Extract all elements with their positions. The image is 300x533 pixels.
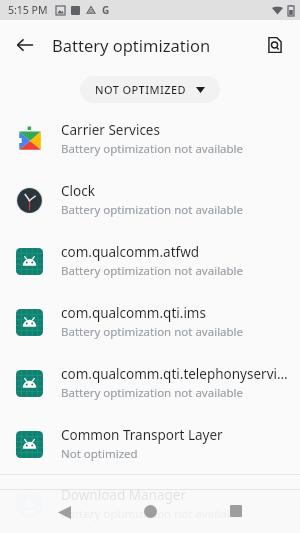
staticText: 5:15 PM — [8, 3, 48, 17]
button[interactable]: Back — [6, 26, 44, 64]
staticText: Common Transport Layer — [61, 426, 223, 444]
staticText: NOT OPTIMIZED — [95, 82, 186, 97]
staticText: com.qualcomm.atfwd — [61, 243, 200, 261]
staticText: Battery optimization not available — [61, 506, 244, 522]
staticText: com.qualcomm.qti.telephonyservice — [61, 365, 288, 383]
staticText: Battery optimization not available — [61, 263, 244, 279]
staticText: G — [102, 3, 110, 17]
staticText: Clock — [61, 182, 95, 200]
staticText: Battery optimization not available — [61, 202, 244, 218]
staticText: Battery optimization not available — [61, 385, 244, 401]
button[interactable]: com.qualcomm.atfwd — [0, 230, 300, 291]
staticText: com.qualcomm.qti.ims — [61, 304, 206, 322]
button[interactable]: Recent apps — [214, 489, 258, 533]
staticText: Battery optimization not available — [61, 141, 244, 157]
button[interactable]: Search in page — [258, 28, 292, 62]
button[interactable]: NOT OPTIMIZED — [80, 76, 220, 103]
staticText: Battery optimization — [52, 34, 258, 56]
staticText: Battery optimization not available — [61, 324, 244, 340]
staticText: Carrier Services — [61, 121, 160, 139]
button[interactable]: Common Transport Layer — [0, 413, 300, 474]
button[interactable]: com.qualcomm.qti.ims — [0, 291, 300, 352]
button[interactable]: Download Manager — [0, 475, 300, 533]
staticText: Download Manager — [61, 486, 186, 504]
staticText: Not optimized — [61, 446, 138, 462]
button[interactable]: Home — [128, 489, 172, 533]
button[interactable]: Clock — [0, 169, 300, 230]
button[interactable]: Carrier Services — [0, 108, 300, 169]
button[interactable]: com.qualcomm.qti.telephonyservice — [0, 352, 300, 413]
button[interactable]: Back — [42, 489, 86, 533]
